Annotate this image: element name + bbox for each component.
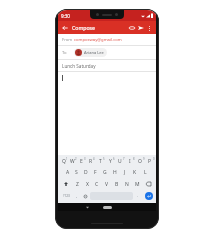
staticText: Y [109, 158, 112, 165]
button[interactable]: N [122, 179, 132, 189]
button[interactable]: U [115, 157, 125, 166]
staticText: . [137, 193, 139, 199]
staticText: 5 [103, 157, 105, 161]
staticText: 9 [143, 157, 145, 161]
staticText: N [125, 181, 129, 188]
staticText: A [66, 169, 70, 176]
button[interactable]: O [135, 157, 145, 166]
staticText: W [70, 158, 75, 165]
staticText: R [89, 158, 93, 165]
staticText: 6 [113, 157, 115, 161]
button[interactable]: To [62, 46, 152, 59]
staticText: Ariana Lee [84, 50, 104, 55]
button[interactable]: Shift [59, 179, 72, 189]
button[interactable]: Enter [145, 192, 153, 200]
button[interactable]: Y [105, 157, 115, 166]
button[interactable]: Lunch Saturday [62, 60, 152, 71]
staticText: 4 [93, 157, 95, 161]
staticText: 3 [84, 157, 86, 161]
button[interactable]: J [120, 168, 130, 177]
staticText: B [115, 181, 119, 188]
button[interactable]: C [92, 179, 102, 189]
button[interactable]: T [95, 157, 105, 166]
staticText: V [105, 181, 109, 188]
staticText: I [129, 158, 131, 165]
button[interactable]: A [63, 168, 72, 177]
staticText: P [148, 158, 152, 165]
staticText: S [75, 169, 78, 176]
button[interactable]: F [90, 168, 100, 177]
staticText: ?123 [63, 194, 70, 198]
button[interactable]: G [100, 168, 110, 177]
staticText: To [62, 50, 74, 56]
staticText: Q [62, 158, 66, 165]
staticText: 1 [66, 157, 68, 161]
button[interactable]: V [102, 179, 112, 189]
staticText: 8 [133, 157, 135, 161]
button[interactable]: P [145, 157, 155, 166]
staticText: Z [76, 181, 79, 188]
staticText: 9:30 [61, 13, 70, 19]
button[interactable]: R [86, 157, 95, 166]
staticText: U [118, 158, 122, 165]
staticText: L [144, 169, 147, 176]
staticText: , [76, 193, 78, 199]
button[interactable]: From [62, 34, 152, 45]
button[interactable]: Send [136, 23, 145, 32]
button[interactable]: D [81, 168, 90, 177]
button[interactable]: Back [83, 203, 91, 211]
button[interactable]: Emoji [81, 191, 89, 201]
button[interactable]: I [125, 157, 135, 166]
staticText: D [84, 169, 88, 176]
staticText: J [124, 169, 126, 176]
button[interactable]: Back [61, 24, 69, 32]
staticText: F [94, 169, 97, 176]
button[interactable]: S [72, 168, 81, 177]
staticText: From [62, 37, 74, 43]
button[interactable]: Home [103, 206, 112, 209]
button[interactable] [62, 75, 152, 152]
button[interactable]: B [112, 179, 122, 189]
staticText: 2 [75, 157, 77, 161]
button[interactable]: H [110, 168, 120, 177]
staticText: E [80, 158, 83, 165]
staticText: T [99, 158, 102, 165]
button[interactable]: L [140, 168, 150, 177]
button[interactable]: W [68, 157, 77, 166]
staticText: Lunch Saturday [62, 63, 96, 69]
staticText: M [135, 181, 140, 188]
button[interactable]: X [82, 179, 92, 189]
staticText: G [103, 169, 107, 176]
staticText: K [133, 169, 137, 176]
button[interactable]: ?123 [59, 191, 73, 201]
button[interactable]: More options [145, 24, 153, 32]
button[interactable]: Attach file [127, 23, 136, 32]
staticText: O [138, 158, 142, 165]
staticText: Compose [72, 24, 96, 31]
button[interactable]: Q [59, 157, 68, 166]
staticText: composway@gmail.com [74, 37, 122, 43]
button[interactable]: Backspace [142, 179, 155, 189]
staticText: X [86, 181, 89, 188]
staticText: 7 [123, 157, 125, 161]
button[interactable]: M [132, 179, 142, 189]
button[interactable]: Z [72, 179, 82, 189]
button[interactable]: Comma [73, 191, 81, 201]
button[interactable]: K [130, 168, 140, 177]
staticText: 0 [153, 157, 155, 161]
staticText: H [113, 169, 117, 176]
button[interactable]: E [77, 157, 86, 166]
staticText: C [95, 181, 99, 188]
